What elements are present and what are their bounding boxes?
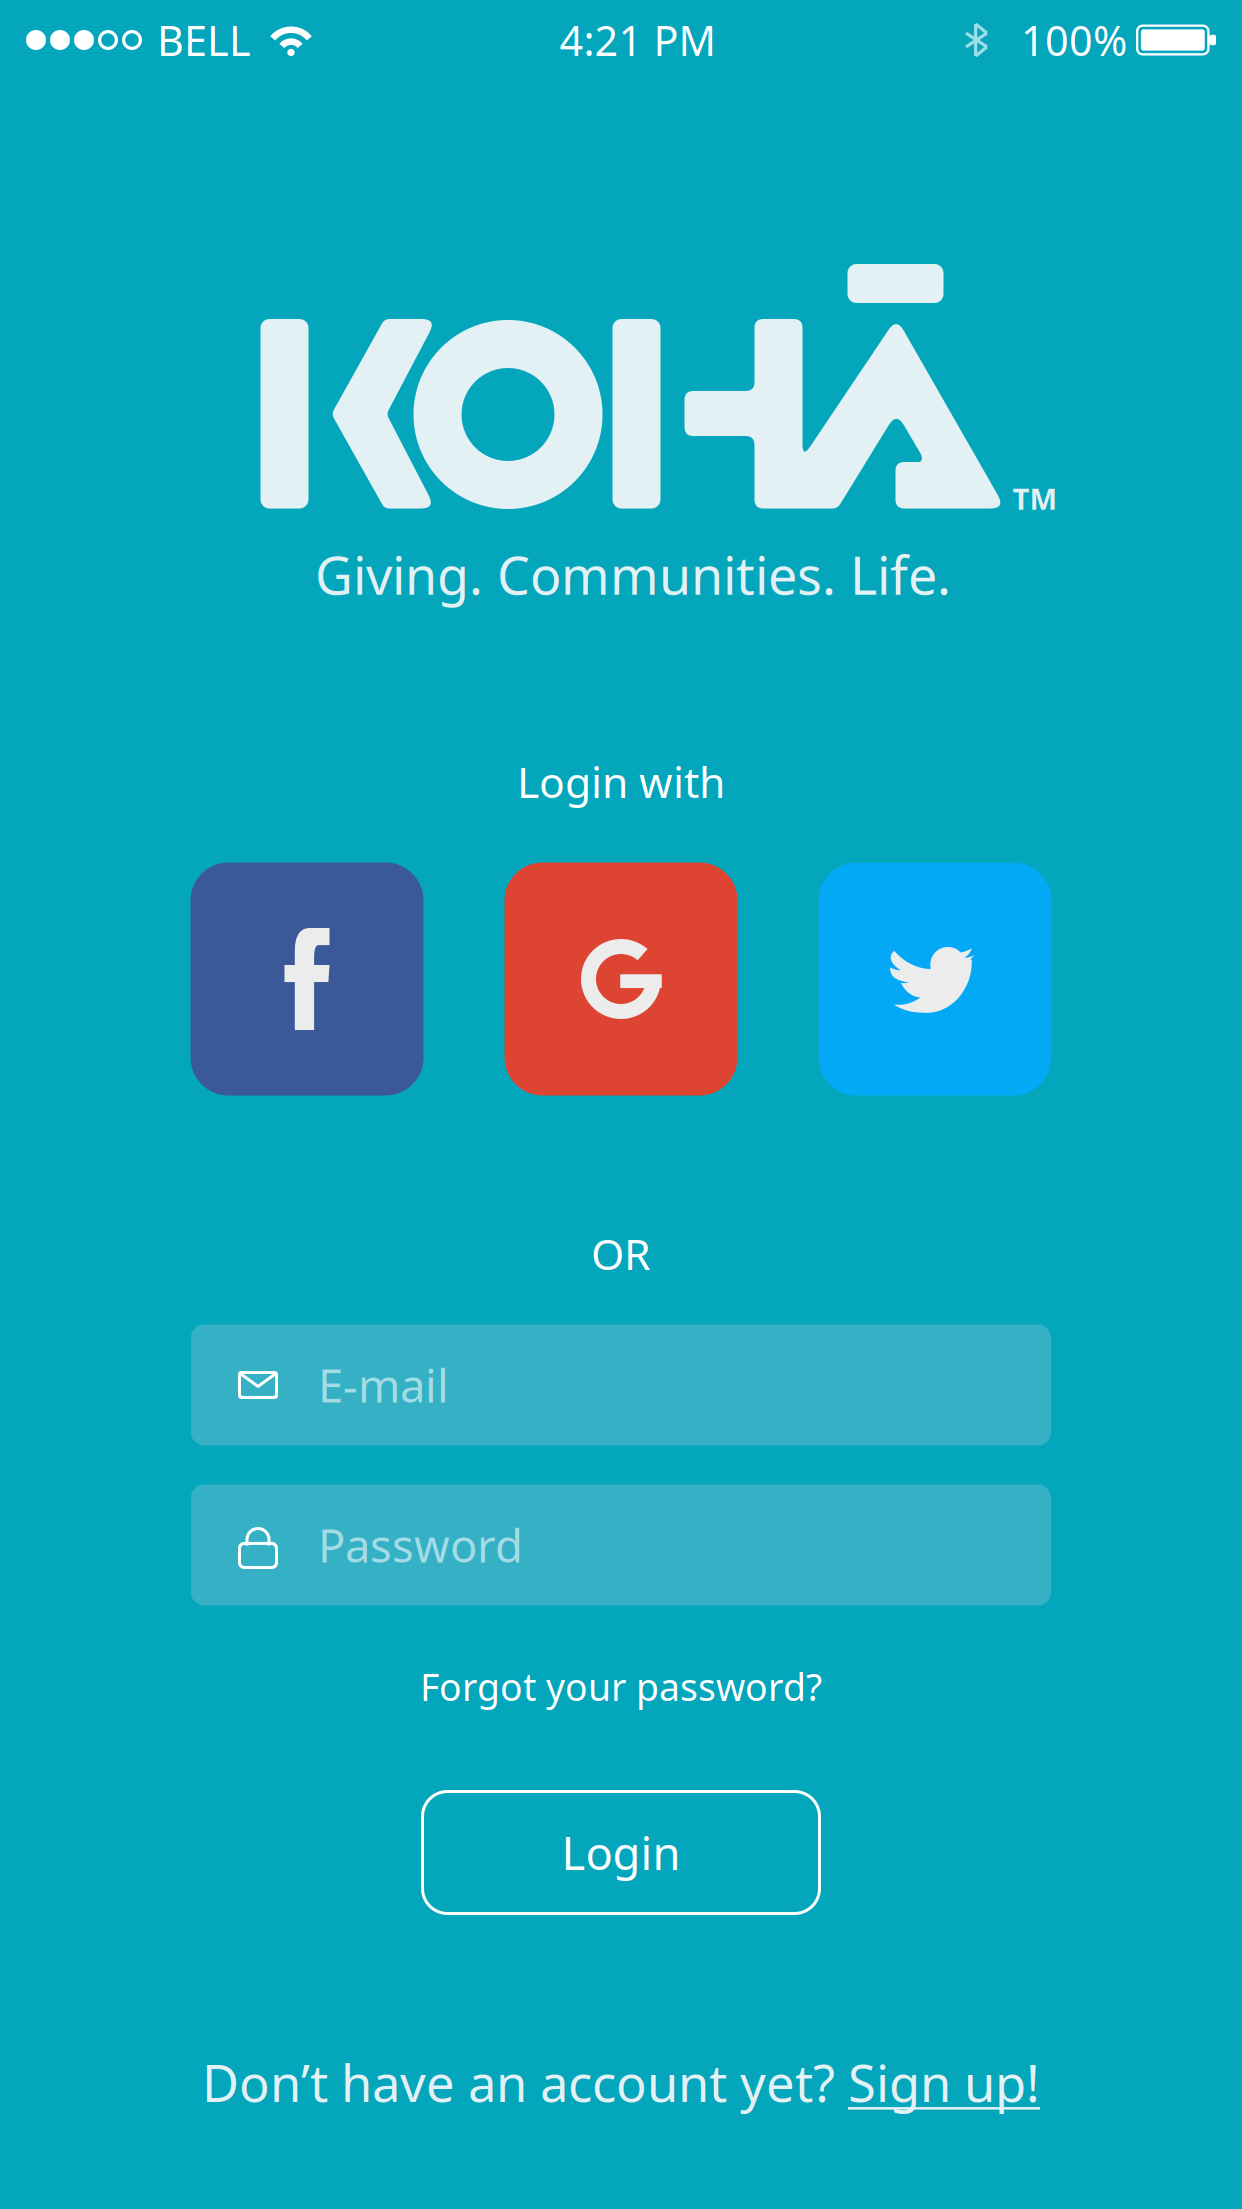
staticText: OR: [591, 1225, 651, 1282]
staticText: 4:21 PM: [559, 13, 715, 67]
button[interactable]: Forgot your password?: [420, 1662, 822, 1710]
staticText: Giving. Communities. Life.: [315, 540, 951, 609]
staticText: Don’t have an account yet?: [202, 2049, 848, 2116]
button[interactable]: Log in with Twitter: [818, 862, 1051, 1095]
button[interactable]: E-mail: [191, 1324, 1051, 1445]
staticText: Login: [561, 1822, 680, 1883]
staticText: Password: [318, 1515, 523, 1575]
button[interactable]: Login: [422, 1791, 819, 1913]
staticText: E-mail: [318, 1355, 449, 1415]
button[interactable]: Log in with Google: [504, 862, 737, 1095]
button[interactable]: Log in with Facebook: [190, 862, 423, 1095]
staticText: BELL: [157, 13, 251, 67]
staticText: Sign up!: [848, 2049, 1040, 2116]
staticText: TM: [1012, 479, 1057, 518]
staticText: 100%: [1021, 13, 1127, 67]
staticText: Login with: [517, 753, 725, 810]
button[interactable]: Sign up!: [848, 2049, 1040, 2116]
staticText: Forgot your password?: [420, 1662, 822, 1711]
button[interactable]: Password: [191, 1484, 1051, 1605]
